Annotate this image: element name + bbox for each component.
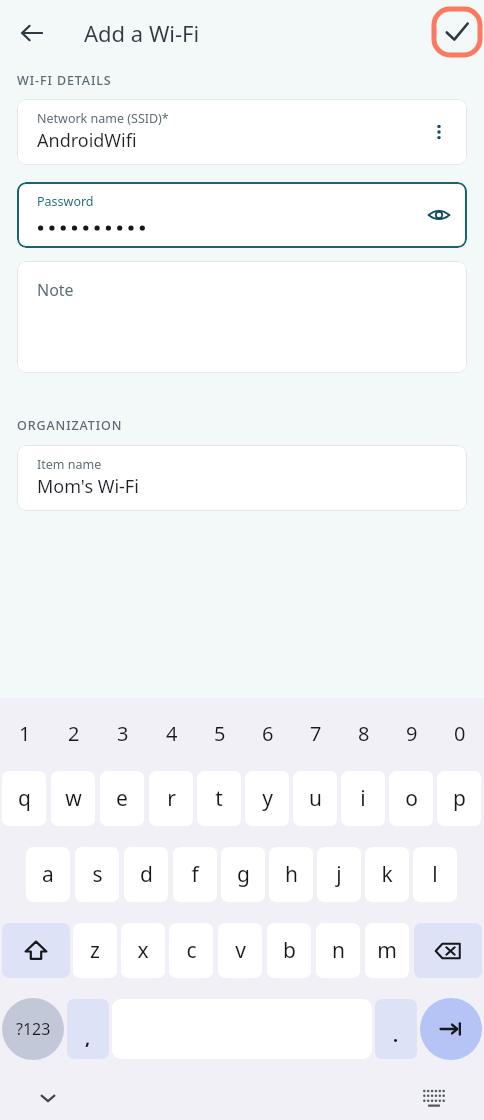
staticText: a [42, 860, 54, 889]
button[interactable]: g [221, 847, 265, 902]
button[interactable]: n [316, 923, 360, 978]
button[interactable]: Shift [2, 923, 70, 978]
staticText: z [90, 936, 100, 965]
staticText: w [65, 784, 82, 813]
staticText: 0 [454, 720, 466, 747]
button[interactable]: Back [8, 9, 56, 57]
button[interactable]: l [413, 847, 457, 902]
button[interactable]: 2 [49, 716, 98, 750]
button[interactable]: w [51, 771, 95, 826]
button[interactable]: 4 [147, 716, 196, 750]
button[interactable]: m [365, 923, 409, 978]
button[interactable]: Password [17, 182, 467, 248]
button[interactable]: p [437, 771, 481, 826]
staticText: i [360, 784, 366, 813]
button[interactable]: o [389, 771, 433, 826]
staticText: q [18, 784, 31, 813]
staticText: 5 [214, 720, 226, 747]
button[interactable]: . [375, 999, 417, 1059]
button[interactable]: Save [430, 5, 484, 59]
button[interactable]: f [173, 847, 217, 902]
staticText: Add a Wi-Fi [84, 18, 200, 48]
button[interactable]: 5 [196, 716, 244, 750]
button[interactable]: d [124, 847, 168, 902]
button[interactable]: 7 [292, 716, 340, 750]
staticText: . [393, 1023, 399, 1048]
staticText: AndroidWifi [37, 128, 137, 153]
staticText: h [285, 860, 298, 889]
button[interactable]: Backspace [414, 923, 482, 978]
button[interactable]: z [73, 923, 117, 978]
staticText: s [92, 860, 103, 889]
staticText: Network name (SSID)* [37, 110, 169, 127]
staticText: Mom's Wi-Fi [37, 474, 139, 499]
staticText: k [381, 860, 393, 889]
staticText: g [237, 860, 250, 889]
button[interactable]: i [341, 771, 385, 826]
button[interactable]: k [365, 847, 409, 902]
staticText: 8 [358, 720, 370, 747]
button[interactable]: q [2, 771, 46, 826]
staticText: 9 [406, 720, 418, 747]
button[interactable]: ?123 [2, 998, 64, 1060]
button[interactable]: 6 [244, 716, 292, 750]
staticText: ?123 [16, 1018, 51, 1040]
button[interactable]: j [317, 847, 361, 902]
button[interactable]: Note [17, 261, 467, 373]
button[interactable]: b [267, 923, 311, 978]
button[interactable]: a [26, 847, 70, 902]
staticText: WI-FI DETAILS [17, 72, 112, 89]
staticText: x [137, 936, 149, 965]
button[interactable]: 0 [436, 716, 484, 750]
button[interactable]: Show password [419, 195, 459, 235]
staticText: Password [37, 193, 94, 210]
staticText: d [140, 860, 153, 889]
staticText: t [215, 784, 223, 813]
staticText: v [235, 936, 246, 965]
staticText: 6 [262, 720, 274, 747]
staticText: y [262, 784, 273, 813]
staticText: , [85, 1026, 91, 1051]
button[interactable]: Switch input method [412, 1076, 456, 1120]
staticText: o [405, 784, 418, 813]
staticText: Note [37, 279, 74, 301]
staticText: 3 [117, 720, 129, 747]
staticText: Item name [37, 456, 102, 473]
button[interactable]: s [75, 847, 119, 902]
button[interactable]: e [100, 771, 144, 826]
staticText: r [167, 784, 176, 813]
staticText: n [332, 936, 345, 965]
button[interactable]: y [245, 771, 289, 826]
button[interactable]: t [197, 771, 241, 826]
button[interactable]: v [218, 923, 262, 978]
staticText: f [191, 860, 199, 889]
staticText: m [377, 936, 397, 965]
button[interactable]: Item name [17, 445, 467, 511]
button[interactable]: 1 [0, 716, 49, 750]
staticText: u [309, 784, 322, 813]
staticText: 4 [166, 720, 178, 747]
staticText: 1 [19, 720, 31, 747]
button[interactable]: h [269, 847, 313, 902]
staticText: c [186, 936, 197, 965]
button[interactable]: x [121, 923, 165, 978]
staticText: 2 [68, 720, 80, 747]
staticText: j [336, 860, 342, 889]
button[interactable]: u [293, 771, 337, 826]
button[interactable]: More options [419, 112, 459, 152]
staticText: e [116, 784, 128, 813]
button[interactable]: , [67, 999, 109, 1059]
staticText: l [432, 860, 438, 889]
button[interactable]: 8 [340, 716, 388, 750]
button[interactable]: r [149, 771, 193, 826]
button[interactable]: 3 [98, 716, 147, 750]
staticText: b [283, 936, 296, 965]
button[interactable]: Hide keyboard [26, 1076, 70, 1120]
staticText: ORGANIZATION [17, 417, 123, 434]
button[interactable]: Enter [420, 998, 482, 1060]
staticText: p [453, 784, 466, 813]
button[interactable]: c [169, 923, 213, 978]
button[interactable]: Network name (SSID)* [17, 99, 467, 165]
button[interactable]: 9 [388, 716, 436, 750]
